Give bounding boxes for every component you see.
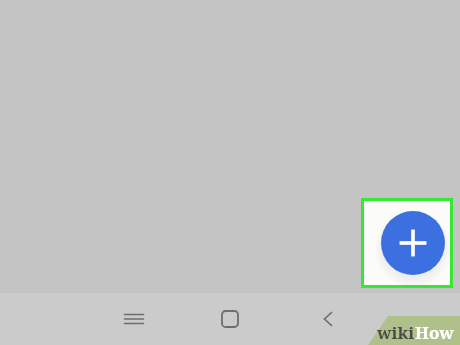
staticText: wiki <box>377 321 415 344</box>
button[interactable]: Add <box>361 198 453 288</box>
button[interactable]: Recent apps <box>110 295 158 343</box>
button[interactable]: Back <box>304 295 352 343</box>
button[interactable]: Home <box>206 295 254 343</box>
staticText: How <box>415 321 454 344</box>
